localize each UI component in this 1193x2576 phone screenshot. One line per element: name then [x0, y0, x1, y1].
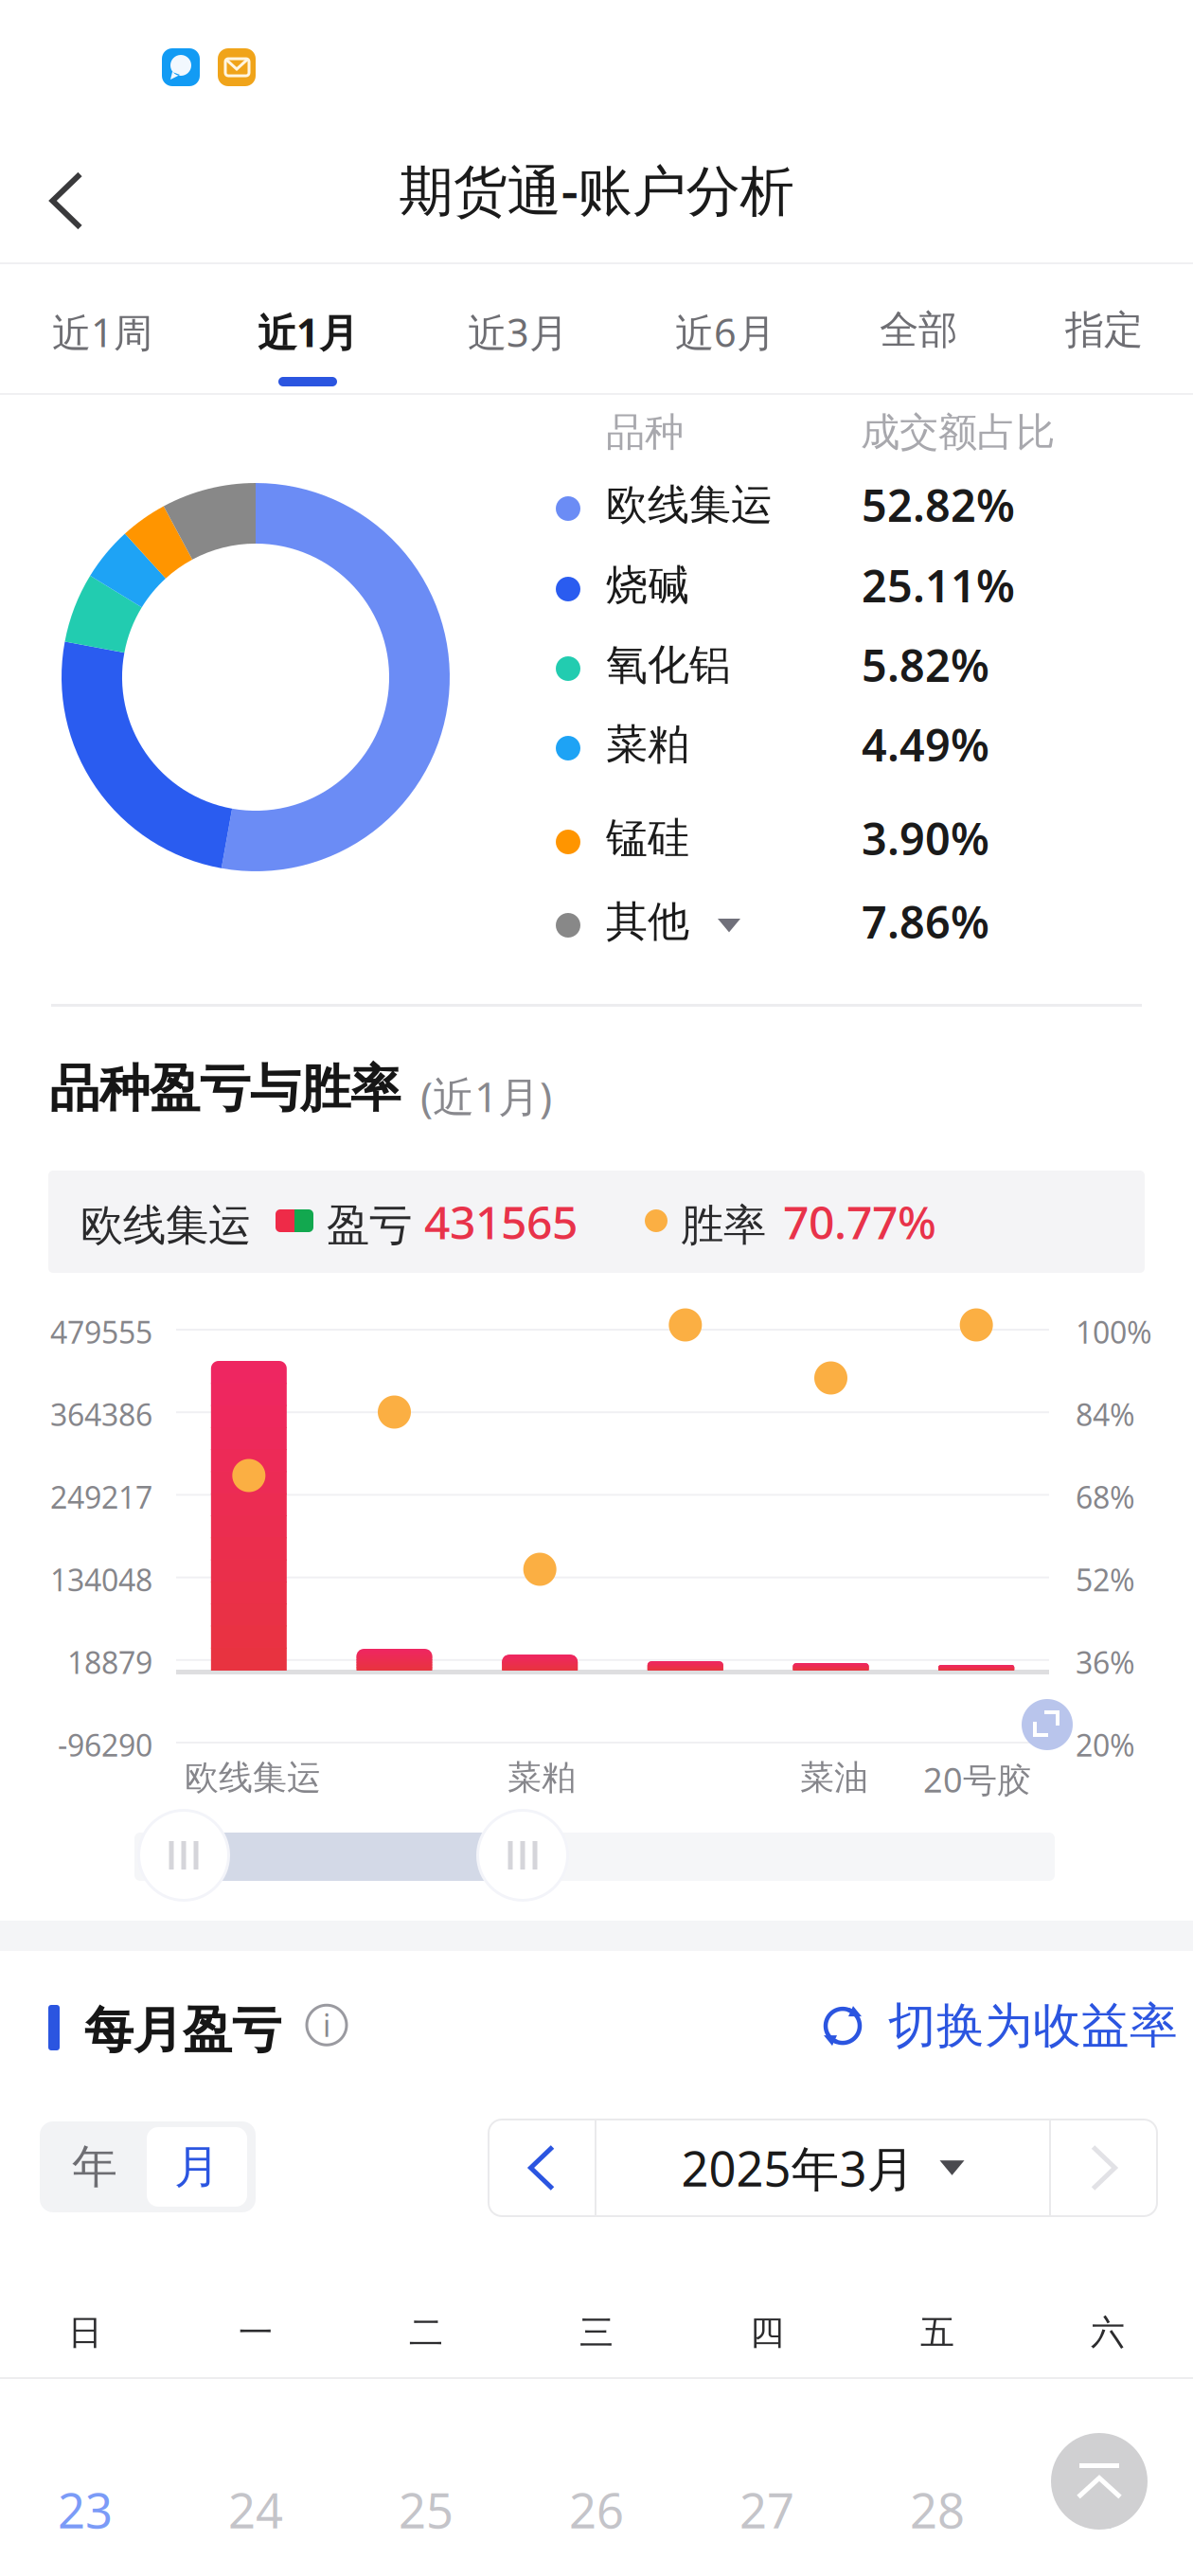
staticText: 氧化铝	[606, 639, 731, 690]
staticText: 菜油	[800, 1757, 868, 1799]
staticText: 每月盈亏	[84, 2000, 281, 2061]
staticText: 70.77%	[783, 1191, 936, 1252]
staticText: 二	[409, 2312, 443, 2354]
staticText: 100%	[1076, 1312, 1152, 1352]
staticText: 52.82%	[862, 475, 1015, 534]
button[interactable]: 切换为收益率	[818, 1987, 1178, 2065]
staticText: 249217	[50, 1477, 152, 1517]
staticText: 52%	[1076, 1559, 1135, 1600]
staticText: 7.86%	[862, 892, 989, 951]
staticText: 烧碱	[606, 560, 689, 611]
staticText: 日	[68, 2312, 102, 2354]
staticText: 四	[750, 2312, 784, 2354]
staticText: 84%	[1076, 1394, 1135, 1435]
staticText: 期货通-账户分析	[399, 153, 794, 225]
staticText: 25.11%	[862, 556, 1015, 615]
staticText: 20%	[1076, 1725, 1135, 1765]
staticText: 全部	[880, 306, 957, 354]
staticText: 4.49%	[862, 715, 989, 774]
button[interactable]: 近1月	[209, 264, 406, 393]
staticText: 5.82%	[862, 635, 989, 694]
button[interactable]: 全部	[820, 264, 1017, 393]
staticText: 锰硅	[606, 813, 689, 864]
staticText: 成交额占比	[861, 408, 1055, 456]
staticText: 479555	[50, 1312, 152, 1352]
staticText: (近1月)	[420, 1068, 552, 1124]
staticText: 2025年3月	[681, 2136, 915, 2200]
staticText: 近1月	[258, 306, 358, 358]
staticText: 菜粕	[507, 1757, 576, 1799]
staticText: 26	[569, 2478, 624, 2542]
staticText: 18879	[67, 1642, 152, 1682]
staticText: 20号胶	[923, 1757, 1031, 1802]
staticText: 近3月	[468, 306, 568, 358]
staticText: 25	[399, 2478, 454, 2542]
button[interactable]: Scroll to top	[1051, 2433, 1148, 2530]
staticText: 431565	[424, 1191, 578, 1252]
staticText: 27	[739, 2478, 794, 2542]
staticText: 68%	[1076, 1477, 1135, 1517]
staticText: -96290	[58, 1725, 152, 1765]
staticText: 切换为收益率	[888, 1996, 1178, 2055]
staticText: 134048	[50, 1559, 152, 1600]
staticText: 近6月	[675, 306, 775, 358]
button[interactable]: Back	[0, 138, 133, 263]
staticText: 36%	[1076, 1642, 1135, 1682]
staticText: 24	[228, 2478, 283, 2542]
staticText: 3.90%	[862, 809, 989, 868]
button[interactable]: 年	[43, 2121, 147, 2212]
button[interactable]: 近1周	[4, 264, 201, 393]
staticText: 品种	[606, 408, 684, 456]
staticText: 胜率	[681, 1199, 766, 1252]
staticText: 五	[920, 2312, 954, 2354]
button[interactable]: 指定	[1006, 264, 1193, 393]
button[interactable]: 2025年3月	[596, 2120, 1049, 2216]
staticText: 近1周	[52, 306, 152, 358]
staticText: 指定	[1065, 306, 1143, 354]
staticText: 三	[579, 2312, 614, 2354]
staticText: i	[323, 2005, 330, 2045]
button[interactable]: Next month	[1051, 2120, 1157, 2216]
staticText: 欧线集运	[80, 1199, 251, 1252]
staticText: 品种盈亏与胜率	[49, 1058, 401, 1120]
staticText: 月	[174, 2139, 220, 2195]
staticText: 盈亏	[327, 1199, 412, 1252]
staticText: 一	[239, 2312, 273, 2354]
staticText: 364386	[50, 1394, 152, 1435]
button[interactable]: 近6月	[627, 264, 824, 393]
staticText: 其他	[606, 896, 689, 947]
staticText: 1	[1094, 2478, 1122, 2542]
button[interactable]: Previous month	[489, 2120, 595, 2216]
button[interactable]: 近3月	[419, 264, 616, 393]
staticText: 欧线集运	[185, 1757, 321, 1799]
button[interactable]: Expand chart	[1022, 1699, 1073, 1750]
button[interactable]: 月	[147, 2127, 247, 2207]
staticText: 年	[72, 2139, 117, 2195]
staticText: 欧线集运	[606, 479, 773, 530]
staticText: 28	[910, 2478, 965, 2542]
staticText: 菜粕	[606, 719, 689, 770]
staticText: 六	[1091, 2312, 1125, 2354]
staticText: 23	[58, 2478, 113, 2542]
